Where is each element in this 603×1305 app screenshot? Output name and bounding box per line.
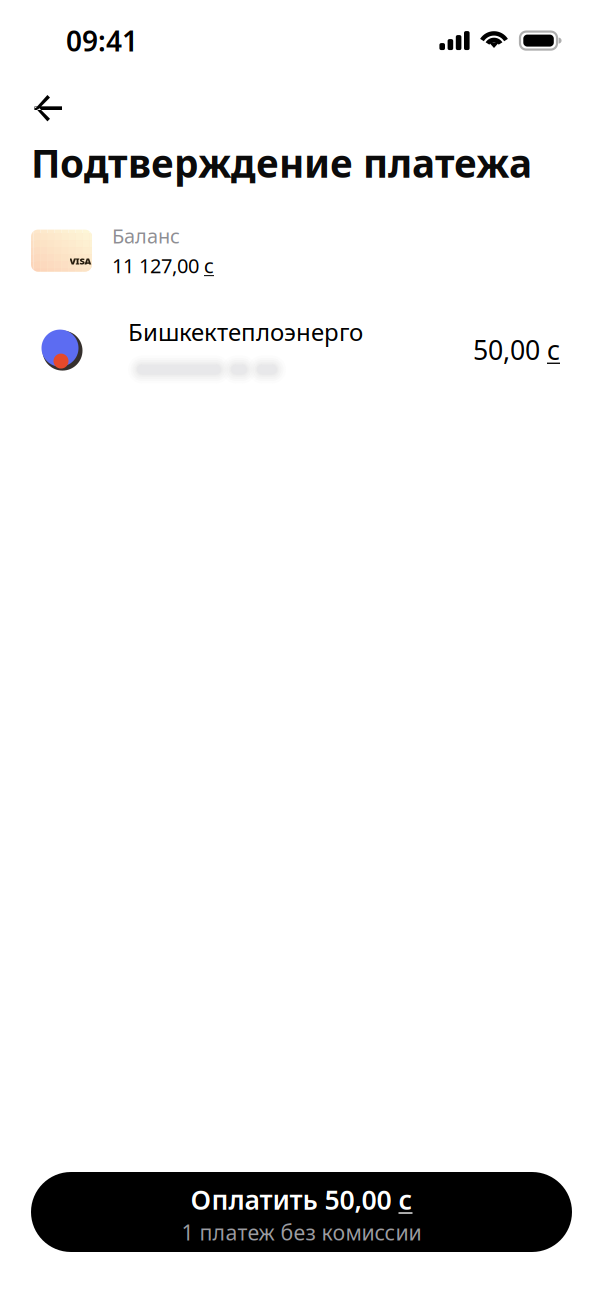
staticText: 50,00 с	[473, 332, 560, 367]
button[interactable]: Back	[0, 77, 84, 135]
button[interactable]: Оплатить 50,00 с	[31, 1172, 572, 1252]
staticText: 1 платеж без комиссии	[181, 1218, 421, 1246]
staticText: VISA	[69, 255, 91, 267]
staticText: 09:41	[66, 22, 138, 59]
staticText: Подтверждение платежа	[31, 137, 532, 188]
staticText: Бишкектеплоэнерго	[128, 316, 363, 347]
staticText: Оплатить 50,00 с	[190, 1182, 412, 1217]
staticText: 11 127,00 с	[112, 252, 214, 279]
staticText: Баланс	[112, 222, 180, 249]
